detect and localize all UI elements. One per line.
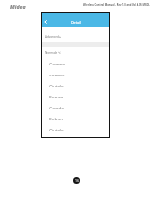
- staticText: Wireless Control Manual - Rev 1.0 and Vo…: [83, 3, 150, 7]
- staticText: Normale ℃: [45, 51, 62, 55]
- button[interactable]: Condensate temperature: [42, 102, 109, 113]
- button[interactable]: Advanced ▸: [42, 27, 109, 42]
- button[interactable]: Back: [42, 13, 109, 27]
- button[interactable]: Outdoor machine current: [42, 80, 109, 91]
- staticText: Outdoor fan speed: [49, 128, 66, 131]
- button[interactable]: Outdoor fan speed: [42, 124, 109, 135]
- staticText: Advanced ▸: [45, 35, 62, 39]
- staticText: Outdoor machine current: [49, 84, 66, 87]
- button[interactable]: Compressor frequency: [42, 58, 109, 69]
- staticText: Detail: [71, 20, 81, 25]
- staticText: Condensate temperature: [49, 106, 66, 109]
- button[interactable]: compressor current: [42, 69, 109, 80]
- staticText: Compressor frequency: [49, 62, 66, 65]
- button[interactable]: Exhaust temperature: [42, 113, 109, 124]
- button[interactable]: Expansion temperature: [42, 91, 109, 102]
- button[interactable]: Back: [43, 19, 49, 25]
- staticText: compressor current: [49, 73, 66, 76]
- staticText: 16: [75, 178, 79, 183]
- staticText: Midea: [10, 3, 26, 10]
- staticText: Expansion temperature: [49, 95, 66, 98]
- staticText: Exhaust temperature: [49, 117, 66, 120]
